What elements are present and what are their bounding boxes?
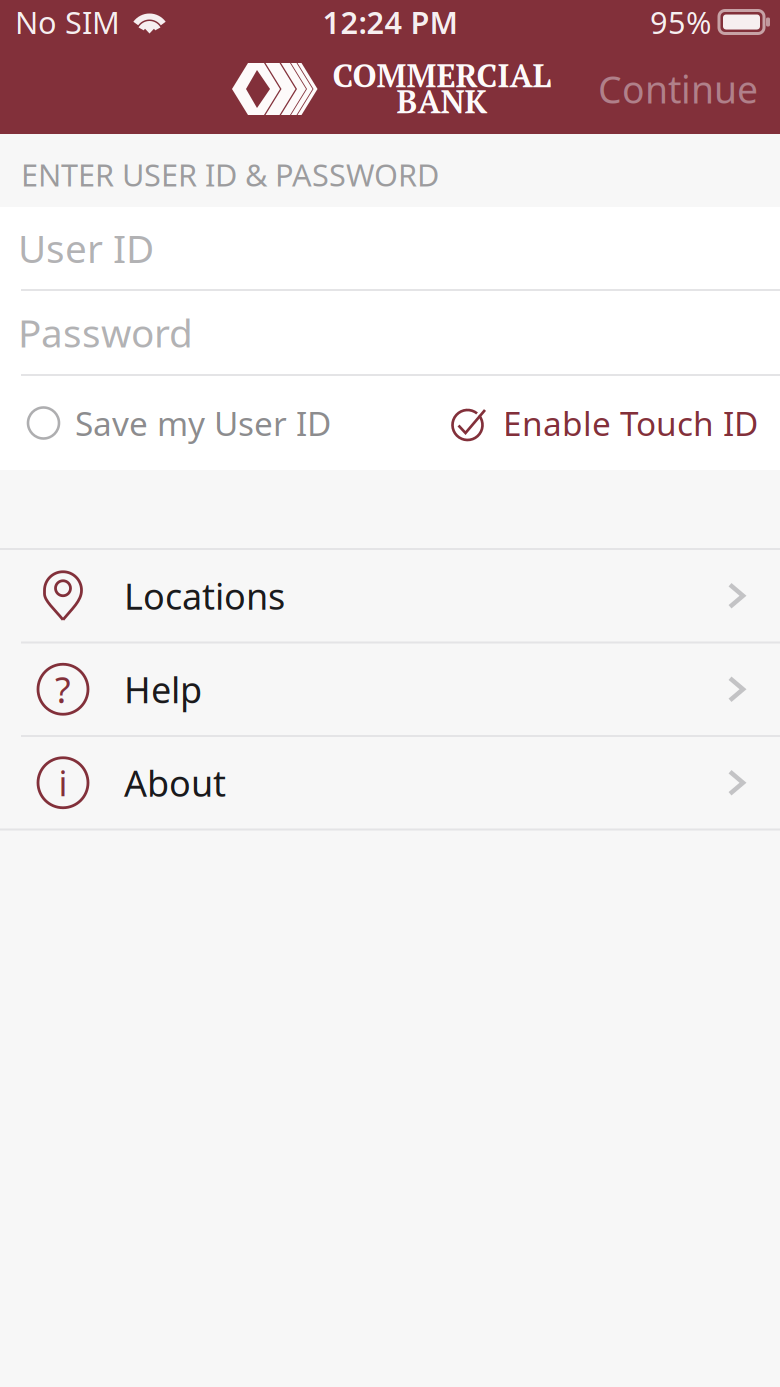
button[interactable]: Enable Touch ID: [451, 376, 780, 470]
button[interactable]: ?: [0, 643, 780, 735]
button[interactable]: i: [0, 737, 780, 828]
staticText: Continue: [598, 64, 758, 114]
staticText: Enable Touch ID: [503, 401, 758, 445]
staticText: No SIM: [15, 2, 120, 42]
button[interactable]: Locations: [0, 550, 780, 641]
staticText: Password: [18, 307, 193, 358]
staticText: Help: [124, 665, 202, 713]
button[interactable]: Continue: [576, 44, 780, 134]
staticText: ENTER USER ID & PASSWORD: [21, 154, 439, 195]
staticText: User ID: [18, 222, 154, 274]
staticText: BANK: [396, 80, 487, 122]
button[interactable]: Save my User ID: [0, 376, 331, 470]
staticText: About: [124, 759, 226, 807]
staticText: ?: [55, 665, 71, 713]
staticText: 12:24 PM: [322, 2, 457, 42]
staticText: i: [58, 760, 67, 806]
staticText: COMMERCIAL: [332, 54, 551, 96]
staticText: Locations: [124, 572, 285, 620]
staticText: Save my User ID: [75, 401, 331, 445]
staticText: 95%: [650, 2, 711, 42]
